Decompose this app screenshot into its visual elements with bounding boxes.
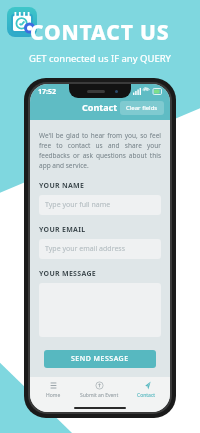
- button[interactable]: Clear fields: [120, 101, 164, 115]
- staticText: Type your full name: [45, 200, 111, 210]
- staticText: CONTACT US: [30, 18, 170, 47]
- staticText: Home: [46, 392, 61, 399]
- button[interactable]: Submit an Event: [76, 377, 123, 403]
- staticText: GET connected us IF any QUERY: [29, 52, 171, 65]
- button[interactable]: Home: [30, 377, 76, 403]
- staticText: YOUR MESSAGE: [39, 269, 97, 279]
- staticText: Type your email address: [45, 244, 126, 254]
- other: App icon: [7, 7, 37, 37]
- button[interactable]: Type your email address: [39, 239, 161, 259]
- button[interactable]: SEND MESSAGE: [44, 350, 156, 368]
- staticText: YOUR EMAIL: [39, 225, 86, 235]
- staticText: Submit an Event: [80, 392, 119, 399]
- staticText: YOUR NAME: [39, 181, 85, 191]
- button[interactable]: Contact: [123, 377, 170, 403]
- staticText: Contact: [137, 392, 156, 399]
- staticText: 17:52: [38, 87, 56, 97]
- staticText: Contact: [82, 101, 118, 113]
- staticText: SEND MESSAGE: [71, 354, 129, 364]
- button[interactable]: Type your full name: [39, 195, 161, 215]
- staticText: Clear fields: [126, 104, 158, 112]
- staticText: We'll be glad to hear from you, so feel …: [39, 131, 161, 170]
